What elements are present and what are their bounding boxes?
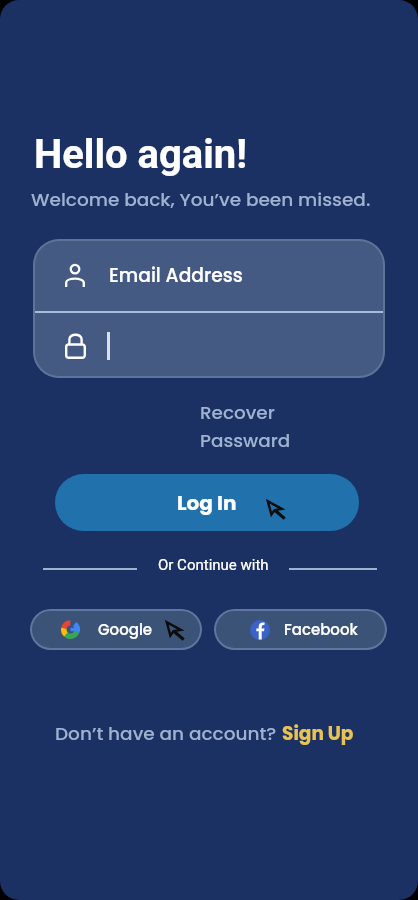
staticText: Recover Passward xyxy=(200,400,367,454)
button[interactable]: Facebook xyxy=(214,609,387,650)
button[interactable]: Google xyxy=(30,609,202,650)
staticText: Hello again! xyxy=(34,131,248,178)
other: Email address xyxy=(65,263,85,287)
staticText: Don’t have an account? xyxy=(55,721,282,747)
other: Password xyxy=(65,333,86,359)
button[interactable]: Email address xyxy=(33,239,385,311)
staticText: Email Address xyxy=(109,262,243,288)
staticText: Sign Up xyxy=(282,721,354,747)
staticText: Log In xyxy=(177,489,237,517)
button[interactable]: Password xyxy=(33,313,385,378)
button[interactable]: Sign Up xyxy=(282,721,354,747)
button[interactable]: Recover Passward xyxy=(200,400,367,454)
staticText: Welcome back, You’ve been missed. xyxy=(31,187,371,213)
staticText: Facebook xyxy=(284,619,358,640)
button[interactable]: Log In xyxy=(55,474,359,531)
staticText: Google xyxy=(98,619,153,640)
staticText: Or Continue with xyxy=(158,556,269,574)
